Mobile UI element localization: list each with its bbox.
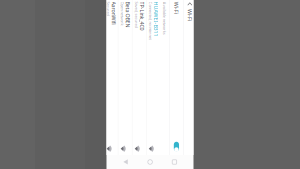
button[interactable]: Home <box>145 157 155 167</box>
staticText: Available networks <box>74 60 107 66</box>
button[interactable]: Back <box>120 156 131 168</box>
button[interactable]: Wi-Fi <box>72 44 227 58</box>
button[interactable]: HUAWEI-B311 <box>72 67 227 81</box>
button[interactable]: TP-Link_4C0 <box>72 81 227 95</box>
button[interactable]: AaronWifi <box>72 110 227 123</box>
staticText: HUAWEI-B311 <box>74 68 109 75</box>
button[interactable]: Recent apps <box>169 157 180 167</box>
button[interactable]: Beta OBEN <box>72 96 227 109</box>
staticText: Connected, no internet <box>74 74 112 80</box>
